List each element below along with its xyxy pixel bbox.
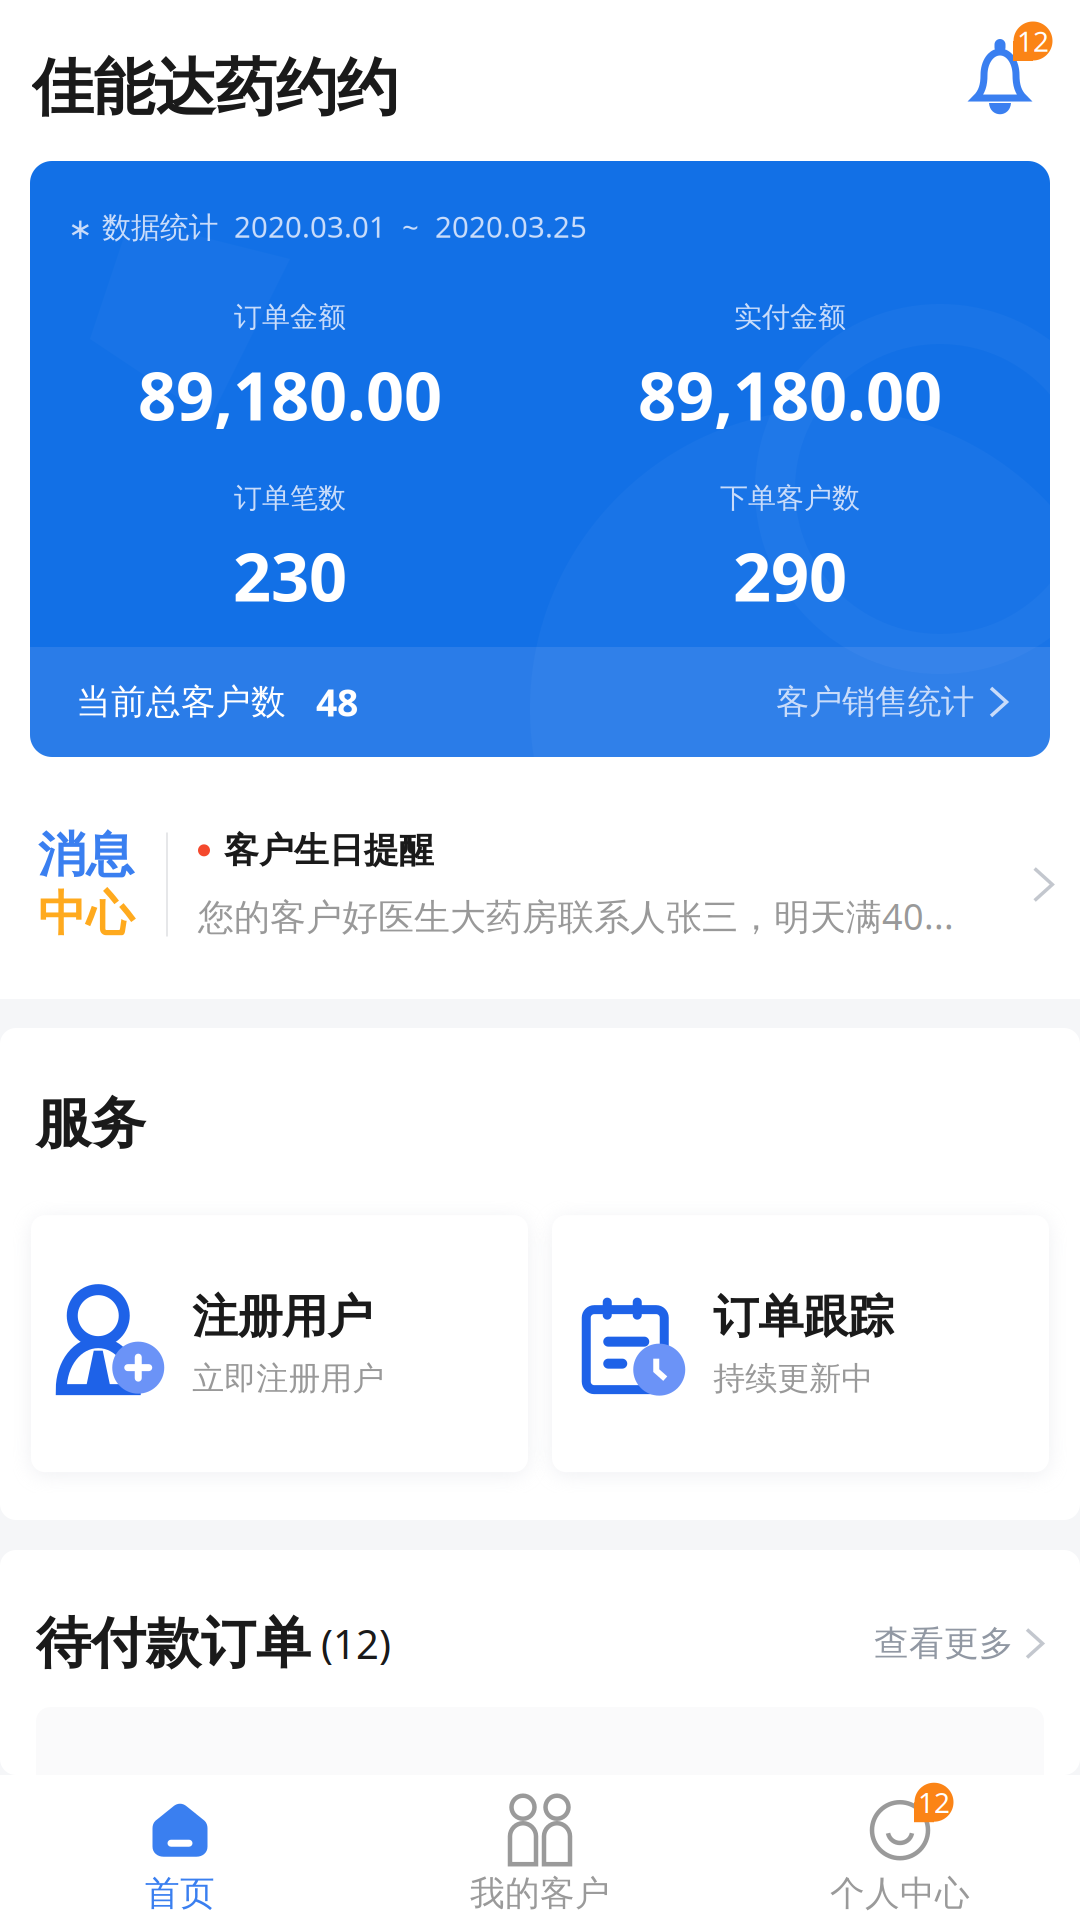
staticText: 持续更新中 — [713, 1359, 873, 1398]
staticText: 服务 — [36, 1090, 146, 1157]
staticText: 我的客户 — [470, 1872, 610, 1915]
staticText: 消息 — [38, 825, 134, 884]
staticText: 12 — [1017, 22, 1049, 60]
staticText: 290 — [733, 531, 847, 620]
staticText: 客户销售统计 — [776, 681, 974, 722]
staticText: 您的客户好医生大药房联系人张三，明天满40岁… — [198, 892, 960, 940]
staticText: 下单客户数 — [720, 481, 860, 515]
staticText: 当前总客户数 — [76, 681, 286, 723]
staticText: (12) — [311, 1617, 391, 1670]
staticText: 230 — [233, 531, 347, 620]
staticText: 个人中心 — [830, 1872, 970, 1915]
staticText: 客户生日提醒 — [224, 829, 434, 872]
staticText: 实付金额 — [734, 300, 846, 334]
staticText: 订单笔数 — [234, 481, 346, 515]
staticText: 12 — [918, 1784, 950, 1821]
staticText: 89,180.00 — [638, 350, 942, 439]
staticText: 订单金额 — [234, 300, 346, 334]
button[interactable]: 消息 — [0, 770, 1080, 999]
button[interactable]: 我的客户 — [360, 1775, 720, 1920]
staticText: 注册用户 — [192, 1289, 372, 1345]
button[interactable]: 注册用户 — [31, 1215, 528, 1472]
button[interactable]: 当前总客户数 — [30, 647, 1050, 757]
staticText: 查看更多 — [874, 1622, 1014, 1665]
staticText: 89,180.00 — [138, 350, 442, 439]
button[interactable]: Notifications — [956, 31, 1044, 119]
staticText: 待付款订单 — [36, 1610, 311, 1677]
staticText: 立即注册用户 — [192, 1359, 384, 1398]
button[interactable]: 首页 — [0, 1775, 360, 1920]
staticText: 订单跟踪 — [713, 1289, 893, 1345]
button[interactable]: 12 — [720, 1775, 1080, 1920]
staticText: 佳能达药约约 — [32, 50, 398, 126]
button[interactable]: 订单跟踪 — [552, 1215, 1049, 1472]
staticText: 48 — [286, 677, 358, 727]
staticText: ∗ 数据统计 2020.03.01 ~ 2020.03.25 — [68, 207, 587, 246]
staticText: 中心 — [38, 884, 134, 943]
button[interactable]: 查看更多 — [874, 1622, 1044, 1665]
staticText: 首页 — [145, 1872, 215, 1915]
